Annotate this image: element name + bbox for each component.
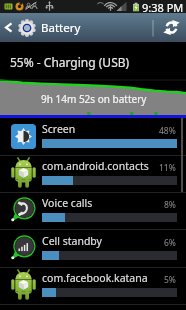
staticText: 9h 14m 52s on battery (41, 92, 147, 106)
staticText: com.android.contacts (42, 159, 149, 173)
staticText: 8% (164, 199, 176, 211)
staticText: Battery (41, 20, 81, 36)
staticText: 55% - Charging (USB) (10, 54, 130, 70)
button[interactable]: Voice calls (0, 193, 186, 230)
staticText: 6% (164, 237, 176, 249)
staticText: 48% (159, 125, 176, 137)
button[interactable]: Refresh (156, 13, 186, 42)
staticText: Voice calls (42, 196, 93, 210)
staticText: com.facebook.katana (42, 271, 148, 285)
button[interactable]: Back to Settings (0, 13, 100, 42)
button[interactable]: com.android.contacts (0, 156, 186, 193)
staticText: Cell standby (42, 234, 102, 248)
staticText: Screen (42, 122, 76, 136)
button[interactable]: Cell standby (0, 231, 186, 268)
staticText: 9:38 PM (142, 0, 184, 13)
button[interactable]: Screen (0, 119, 186, 156)
staticText: 11% (159, 162, 176, 174)
staticText: 5% (164, 274, 176, 286)
button[interactable]: com.facebook.katana (0, 268, 186, 305)
